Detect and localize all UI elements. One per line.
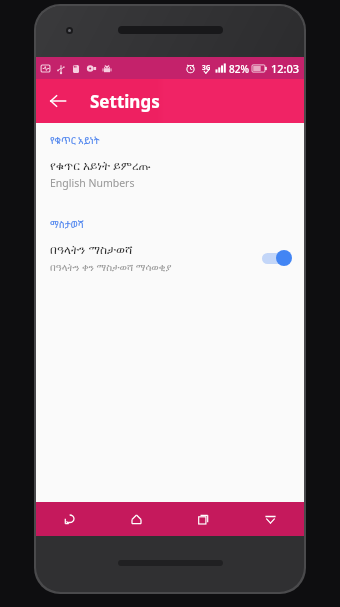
staticText: Settings — [90, 90, 160, 113]
button[interactable]: Back — [40, 83, 76, 119]
staticText: 12:03 — [271, 61, 300, 76]
button[interactable]: የቁጥር አይነት ይምረጡ — [36, 155, 304, 196]
button[interactable]: በዓላትን ማስታወሻ — [36, 239, 304, 280]
staticText: በዓላትን ቀን ማስታወሻ ማሳወቂያ — [50, 260, 172, 274]
button[interactable]: Recent apps — [170, 502, 237, 536]
staticText: 82% — [229, 62, 249, 76]
staticText: ማስታወሻ — [50, 218, 84, 231]
staticText: በዓላትን ማስታወሻ — [50, 241, 133, 257]
button[interactable]: Holiday reminder toggle — [260, 246, 294, 270]
staticText: የቁጥር አይነት — [50, 134, 100, 147]
button[interactable]: Hide navigation bar — [237, 502, 304, 536]
button[interactable]: Home — [103, 502, 170, 536]
staticText: English Numbers — [50, 176, 135, 190]
button[interactable]: Back — [36, 502, 103, 536]
staticText: 3G — [202, 63, 211, 72]
staticText: የቁጥር አይነት ይምረጡ — [50, 157, 151, 173]
